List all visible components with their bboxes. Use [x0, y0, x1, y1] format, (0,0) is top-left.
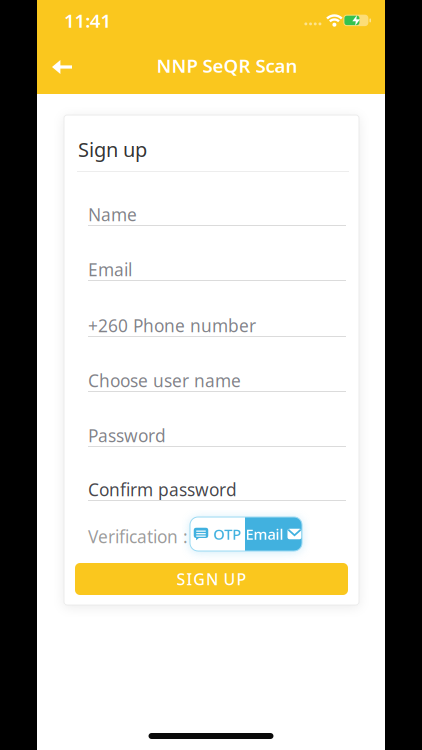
staticText: +260 Phone number: [88, 314, 256, 337]
staticText: Choose user name: [88, 369, 241, 392]
button[interactable]: SIGN UP: [75, 563, 348, 595]
staticText: SIGN UP: [177, 568, 246, 590]
button[interactable]: Password: [88, 425, 346, 447]
button[interactable]: Name: [88, 204, 346, 226]
button[interactable]: OTP: [190, 517, 245, 551]
staticText: Sign up: [78, 136, 147, 163]
staticText: 11:41: [64, 8, 111, 33]
button[interactable]: Confirm password: [88, 479, 346, 501]
button[interactable]: Email: [245, 517, 302, 551]
staticText: Email: [245, 524, 283, 544]
button[interactable]: Back: [37, 48, 84, 86]
staticText: NNP SeQR Scan: [156, 53, 297, 78]
staticText: Name: [88, 203, 137, 226]
button[interactable]: Home: [148, 733, 273, 739]
button[interactable]: +260 Phone number: [88, 315, 346, 337]
staticText: Email: [88, 258, 132, 281]
staticText: Verification :: [88, 525, 188, 548]
staticText: OTP: [213, 524, 241, 544]
staticText: Password: [88, 424, 166, 447]
button[interactable]: Choose user name: [88, 370, 346, 392]
staticText: Confirm password: [88, 478, 237, 501]
button[interactable]: Email: [88, 259, 346, 281]
